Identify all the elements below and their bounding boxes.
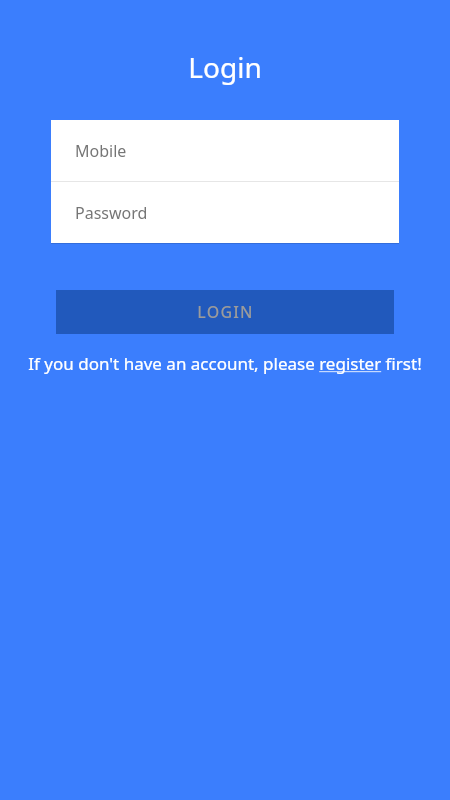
button[interactable]: Mobile (51, 120, 399, 181)
staticText: Password (75, 202, 148, 224)
staticText: Mobile (75, 140, 127, 162)
button[interactable]: LOGIN (56, 290, 394, 334)
button[interactable]: Register (24, 352, 426, 375)
staticText: Login (188, 48, 262, 86)
button[interactable]: Password (51, 182, 399, 243)
staticText: If you don't have an account, please reg… (24, 352, 426, 375)
staticText: LOGIN (197, 301, 254, 323)
